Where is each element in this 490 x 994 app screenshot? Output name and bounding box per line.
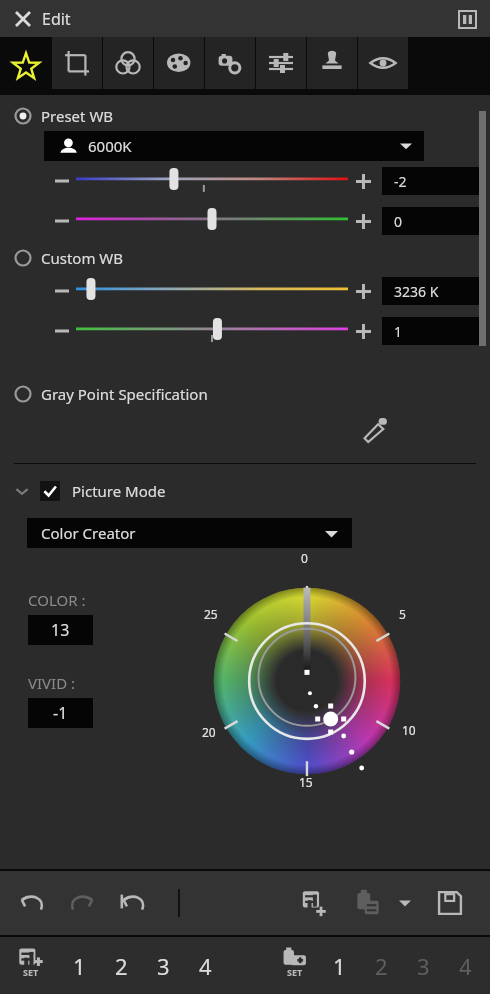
staticText: Picture Mode [72,481,166,501]
button[interactable]: Increase [352,280,374,302]
staticText: 2 [115,951,128,981]
button[interactable]: 6000K [44,131,424,161]
button[interactable]: Decrease [52,171,72,191]
staticText: 3236 K [394,282,439,301]
staticText: 15 [299,774,313,790]
button[interactable]: 0 [382,207,482,235]
button[interactable]: Close [6,2,40,36]
staticText: -2 [394,172,407,191]
staticText: 4 [199,951,212,981]
button[interactable]: Paste settings [346,881,390,925]
button[interactable]: Gray Point Specification [0,381,490,407]
button[interactable]: Stamp [307,37,357,89]
staticText: 1 [333,951,346,981]
button[interactable]: Reset all [110,881,154,925]
button[interactable]: 4 [184,943,226,989]
button[interactable]: Palette [154,37,204,89]
staticText: Preset WB [41,106,114,126]
staticText: 3 [157,951,170,981]
button[interactable]: Undo [10,881,54,925]
staticText: 1 [394,322,403,341]
staticText: SET [23,966,39,978]
button[interactable]: Crop [52,37,102,89]
button[interactable]: Color Creator [27,518,352,548]
staticText: 13 [51,619,70,641]
staticText: 0 [394,212,403,231]
staticText: 1 [73,951,86,981]
button[interactable]: Art filter [205,37,255,89]
button[interactable] [72,168,352,194]
button[interactable]: Adjust [256,37,306,89]
button[interactable]: 3236 K [382,277,482,305]
staticText: 20 [202,724,216,740]
button[interactable]: Decrease [52,321,72,341]
staticText: 3 [417,951,430,981]
button[interactable]: Preset WB [0,103,490,129]
button[interactable]: 1 [382,317,482,345]
staticText: 0 [301,550,308,566]
button[interactable]: Redo [60,881,104,925]
button[interactable]: Eyedropper [358,412,394,448]
button[interactable]: 1 [318,943,360,989]
button[interactable] [72,278,352,304]
button[interactable]: Favorites [0,37,51,95]
button[interactable]: Color [103,37,153,89]
button[interactable]: Color wheel [186,550,438,802]
button[interactable]: 3 [142,943,184,989]
button[interactable]: Copy set [8,943,54,989]
staticText: 25 [204,606,218,622]
button[interactable] [72,318,352,344]
button[interactable]: Save [428,881,472,925]
staticText: 10 [402,722,416,738]
button[interactable]: 4 [444,943,486,989]
button[interactable]: Picture Mode [0,478,490,504]
button[interactable]: -2 [382,167,482,195]
button[interactable]: Decrease [52,211,72,231]
button[interactable]: 13 [28,615,93,645]
staticText: Color Creator [41,523,136,543]
button[interactable]: 2 [100,943,142,989]
staticText: 2 [375,951,388,981]
staticText: Custom WB [41,248,124,268]
button[interactable]: Copy settings [292,881,336,925]
staticText: Edit [42,8,71,30]
button[interactable]: More [392,890,418,916]
staticText: COLOR : [28,590,86,610]
button[interactable]: Custom WB [0,245,490,271]
staticText: 4 [459,951,472,981]
staticText: 6000K [88,136,132,156]
button[interactable]: -1 [28,698,93,728]
button[interactable]: 1 [58,943,100,989]
button[interactable]: Decrease [52,281,72,301]
staticText: -1 [53,702,68,724]
button[interactable]: Increase [352,320,374,342]
button[interactable]: Split view [452,4,482,34]
button[interactable]: 2 [360,943,402,989]
button[interactable]: 3 [402,943,444,989]
staticText: Gray Point Specification [41,384,208,404]
staticText: SET [287,966,303,978]
button[interactable]: Increase [352,210,374,232]
button[interactable]: Increase [352,170,374,192]
button[interactable] [72,208,352,234]
staticText: 5 [399,606,406,622]
staticText: VIVID : [28,673,76,693]
button[interactable]: Preview [358,37,408,89]
button[interactable]: Paste set [272,943,318,989]
